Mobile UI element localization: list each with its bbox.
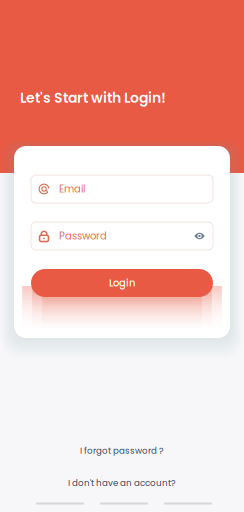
button[interactable]: I forgot password ? — [70, 440, 174, 462]
staticText: Let's Start with Login! — [20, 88, 166, 108]
staticText: Password — [59, 229, 107, 243]
staticText: I forgot password ? — [80, 445, 164, 457]
staticText: I don't have an account? — [68, 477, 176, 489]
button[interactable]: I don't have an account? — [58, 472, 186, 494]
button[interactable]: Email — [31, 175, 213, 203]
staticText: Email — [59, 182, 85, 196]
button[interactable]: Login — [31, 269, 213, 297]
button[interactable]: Show password — [194, 230, 205, 241]
staticText: Login — [109, 276, 135, 290]
button[interactable]: Password — [31, 222, 213, 250]
